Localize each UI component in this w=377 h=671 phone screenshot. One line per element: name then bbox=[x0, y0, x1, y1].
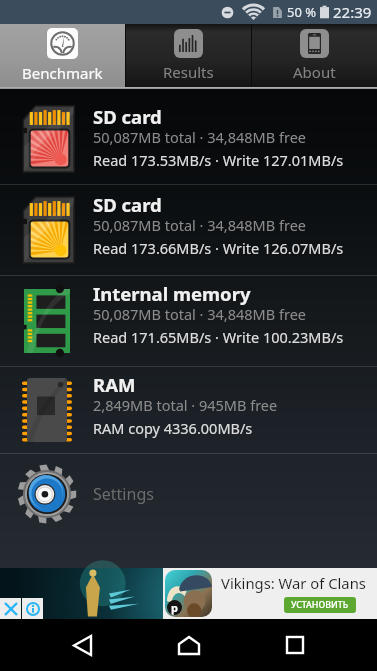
staticText: RAM bbox=[93, 372, 136, 397]
staticText: Read 173.53MB/s · Write 127.01MB/s bbox=[93, 150, 344, 170]
button[interactable]: About bbox=[252, 24, 377, 89]
staticText: 50,087MB total · 34,848MB free bbox=[93, 127, 306, 147]
staticText: p bbox=[171, 600, 178, 615]
button[interactable]: RAM bbox=[0, 367, 377, 453]
staticText: SD card bbox=[93, 104, 162, 129]
staticText: Settings bbox=[93, 483, 154, 505]
staticText: RAM copy 4336.00MB/s bbox=[93, 418, 253, 438]
button[interactable]: Home bbox=[165, 621, 213, 669]
staticText: Vikings: War of Clans bbox=[221, 573, 366, 593]
staticText: 50 % bbox=[287, 3, 317, 21]
staticText: About bbox=[293, 62, 336, 82]
staticText: 2,849MB total · 945MB free bbox=[93, 395, 278, 415]
staticText: Results bbox=[163, 62, 214, 82]
button[interactable]: Back bbox=[58, 621, 106, 669]
staticText: Read 173.66MB/s · Write 126.07MB/s bbox=[93, 238, 344, 258]
staticText: Benchmark bbox=[22, 63, 103, 83]
staticText: 22:39 bbox=[333, 2, 372, 22]
button[interactable]: SD card bbox=[0, 94, 377, 184]
button[interactable]: Internal memory bbox=[0, 276, 377, 366]
button[interactable]: p bbox=[0, 568, 377, 619]
button[interactable]: Results bbox=[126, 24, 251, 89]
staticText: 50,087MB total · 34,848MB free bbox=[93, 304, 306, 324]
staticText: Internal memory bbox=[93, 281, 251, 306]
button[interactable]: Recents bbox=[271, 621, 319, 669]
button[interactable]: УСТАНОВИТЬ bbox=[284, 597, 356, 613]
button[interactable]: SD card bbox=[0, 185, 377, 275]
staticText: УСТАНОВИТЬ bbox=[291, 599, 349, 611]
button[interactable]: Ad info bbox=[22, 598, 43, 619]
button[interactable]: Settings bbox=[0, 454, 377, 534]
button[interactable]: Benchmark bbox=[0, 24, 125, 89]
staticText: Read 171.65MB/s · Write 100.23MB/s bbox=[93, 327, 344, 347]
staticText: 50,087MB total · 34,848MB free bbox=[93, 215, 306, 235]
staticText: SD card bbox=[93, 192, 162, 217]
button[interactable]: Close ad bbox=[0, 598, 21, 619]
